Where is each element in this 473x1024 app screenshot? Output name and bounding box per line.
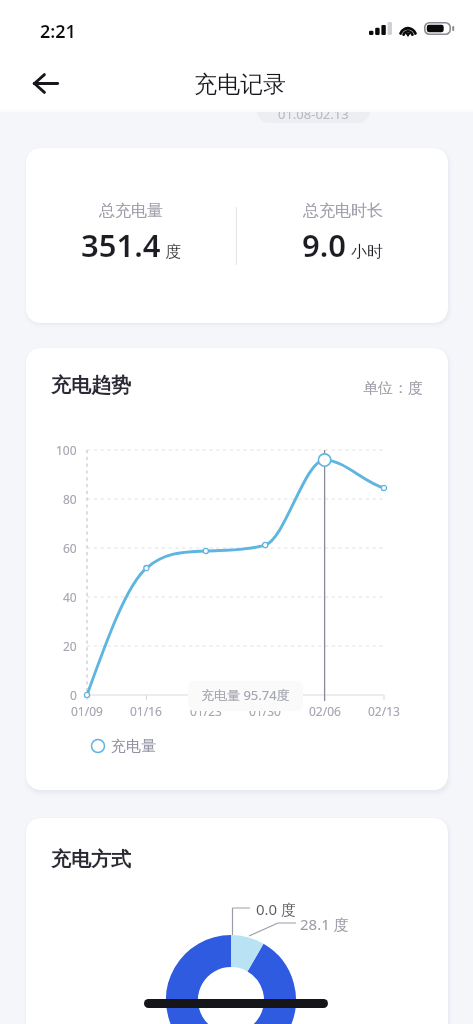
staticText: 2:21 (40, 19, 76, 44)
button[interactable]: 01.08-02.13 (257, 98, 370, 123)
staticText: 总充电时长 (303, 201, 383, 221)
staticText: 01.08-02.13 (278, 105, 349, 123)
staticText: 0.0 度 (256, 899, 297, 919)
staticText: 小时 (351, 242, 383, 262)
button[interactable]: Back (22, 60, 68, 106)
staticText: 充电趋势 (51, 373, 131, 398)
staticText: 度 (165, 242, 181, 262)
staticText: 单位：度 (363, 379, 423, 398)
staticText: 80 (63, 491, 77, 507)
staticText: 02/06 (309, 703, 341, 719)
staticText: 充电量 95.74度 (201, 686, 290, 704)
staticText: 28.1 度 (300, 914, 349, 934)
staticText: 01/09 (71, 703, 103, 719)
staticText: 充电量 (111, 737, 156, 756)
staticText: 01/23 (190, 703, 222, 719)
staticText: 20 (63, 638, 77, 654)
staticText: 100 (56, 442, 77, 458)
staticText: 总充电量 (99, 201, 163, 221)
staticText: 充电记录 (194, 70, 286, 99)
staticText: 60 (63, 540, 77, 556)
staticText: 01/30 (249, 703, 281, 719)
staticText: 02/13 (368, 703, 400, 719)
staticText: 充电方式 (51, 847, 131, 872)
staticText: 351.4 (81, 224, 161, 266)
staticText: 0 (70, 687, 77, 703)
staticText: 01/16 (130, 703, 162, 719)
staticText: 9.0 (302, 224, 347, 266)
staticText: 40 (63, 589, 77, 605)
